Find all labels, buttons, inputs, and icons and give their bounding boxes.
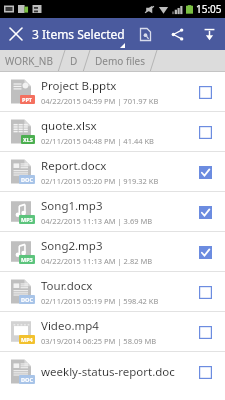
- staticText: DOC: [21, 176, 33, 183]
- staticText: Demo files: [95, 54, 145, 68]
- staticText: PPT: [22, 96, 33, 103]
- staticText: MP4: [21, 336, 33, 343]
- staticText: quote.xlsx: [41, 118, 97, 134]
- staticText: MP3: [21, 216, 33, 223]
- button[interactable]: Demo files: [90, 50, 150, 72]
- button[interactable]: WORK_NB: [0, 50, 58, 72]
- button[interactable]: Not selected: [193, 360, 217, 384]
- staticText: D: [70, 54, 78, 68]
- button[interactable]: PPT: [0, 72, 225, 111]
- button[interactable]: Not selected: [193, 80, 217, 104]
- staticText: 02/11/2015 05:19 PM | 598.42 KB: [41, 296, 159, 306]
- staticText: 04/22/2015 04:59 PM | 701.97 KB: [41, 96, 159, 106]
- button[interactable]: Selected: [193, 200, 217, 224]
- button[interactable]: Not selected: [193, 120, 217, 144]
- staticText: 02/11/2015 05:20 PM | 919.32 KB: [41, 176, 159, 186]
- staticText: 3 Items Selected: [32, 26, 125, 42]
- button[interactable]: Not selected: [193, 280, 217, 304]
- staticText: Report.docx: [41, 158, 107, 174]
- button[interactable]: Selected: [193, 160, 217, 184]
- button[interactable]: DOC: [0, 152, 225, 191]
- button[interactable]: DOC: [0, 272, 225, 311]
- staticText: 04/22/2015 11:13 AM | 3.69 MB: [41, 216, 153, 226]
- button[interactable]: 3 Items Selected: [32, 18, 129, 50]
- button[interactable]: Close selection: [0, 18, 32, 50]
- staticText: Tour.docx: [41, 278, 93, 294]
- staticText: DOC: [21, 296, 33, 303]
- staticText: MP3: [21, 256, 33, 263]
- button[interactable]: DOC: [0, 352, 225, 391]
- button[interactable]: Share: [161, 18, 193, 50]
- staticText: Video.mp4: [41, 318, 99, 334]
- staticText: 02/11/2015 04:48 PM | 41.44 KB: [41, 136, 154, 146]
- staticText: weekly-status-report.doc: [41, 364, 175, 380]
- button[interactable]: Rename: [129, 18, 161, 50]
- button[interactable]: MP3: [0, 232, 225, 271]
- staticText: WORK_NB: [5, 54, 53, 68]
- staticText: DOC: [21, 376, 33, 383]
- staticText: 04/22/2015 11:13 AM | 2.82 MB: [41, 256, 153, 266]
- button[interactable]: MP3: [0, 192, 225, 231]
- staticText: Song1.mp3: [41, 198, 103, 214]
- staticText: Song2.mp3: [41, 238, 103, 254]
- staticText: 03/19/2014 06:25 PM | 58.09 MB: [41, 336, 157, 346]
- button[interactable]: Not selected: [193, 320, 217, 344]
- staticText: XLS: [23, 136, 33, 143]
- staticText: 15:05: [196, 2, 222, 16]
- button[interactable]: D: [65, 50, 83, 72]
- staticText: Project B.pptx: [41, 78, 117, 94]
- button[interactable]: Download: [193, 18, 225, 50]
- button[interactable]: Selected: [193, 240, 217, 264]
- button[interactable]: MP4: [0, 312, 225, 351]
- button[interactable]: XLS: [0, 112, 225, 151]
